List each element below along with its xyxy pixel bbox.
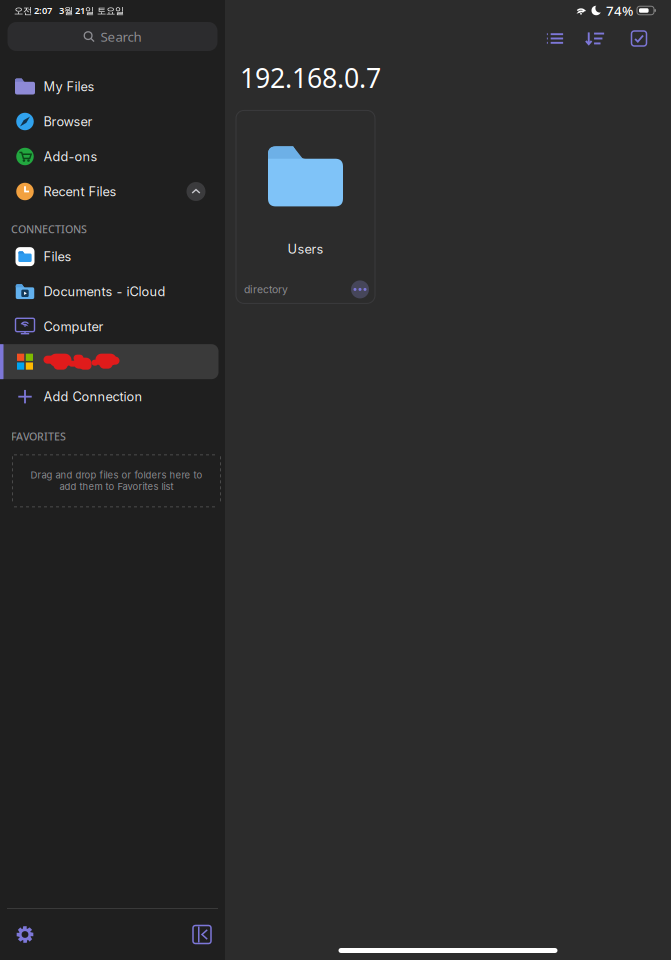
staticText: Browser <box>43 114 92 129</box>
button[interactable]: Sort <box>575 21 615 55</box>
staticText: CONNECTIONS <box>11 222 87 236</box>
button[interactable]: Files <box>0 239 225 274</box>
staticText: Search <box>100 28 141 45</box>
staticText: Files <box>43 249 71 264</box>
staticText: FAVORITES <box>11 429 66 443</box>
button[interactable]: Computer <box>0 309 225 344</box>
button[interactable]: Browser <box>0 104 225 139</box>
staticText: My Files <box>43 79 94 94</box>
staticText: directory <box>244 283 288 296</box>
button[interactable]: Documents - iCloud <box>0 274 225 309</box>
button[interactable]: My Files <box>0 69 225 104</box>
staticText: add them to Favorites list <box>59 481 173 492</box>
staticText: 오전 2:07 <box>14 4 52 17</box>
button[interactable]: Select <box>615 21 663 55</box>
staticText: Recent Files <box>43 184 116 199</box>
staticText: Drag and drop files or folders here to <box>30 469 202 481</box>
staticText: 192.168.0.7 <box>240 60 381 95</box>
button[interactable]: Add Connection <box>0 379 225 414</box>
staticText: 74% <box>606 2 633 19</box>
button[interactable]: Hide Sidebar <box>185 917 219 951</box>
staticText: Add Connection <box>43 389 142 404</box>
button[interactable] <box>0 344 225 379</box>
button[interactable]: Recent Files <box>0 174 225 209</box>
staticText: 3월 21일 토요일 <box>59 4 124 17</box>
button[interactable]: Users <box>236 110 375 303</box>
staticText: Users <box>287 241 323 257</box>
staticText: Documents - iCloud <box>43 284 165 299</box>
button[interactable]: Add-ons <box>0 139 225 174</box>
button[interactable]: Settings <box>8 917 42 951</box>
button[interactable]: View options <box>535 21 575 55</box>
staticText: Add-ons <box>43 149 97 164</box>
staticText: Computer <box>43 319 103 334</box>
